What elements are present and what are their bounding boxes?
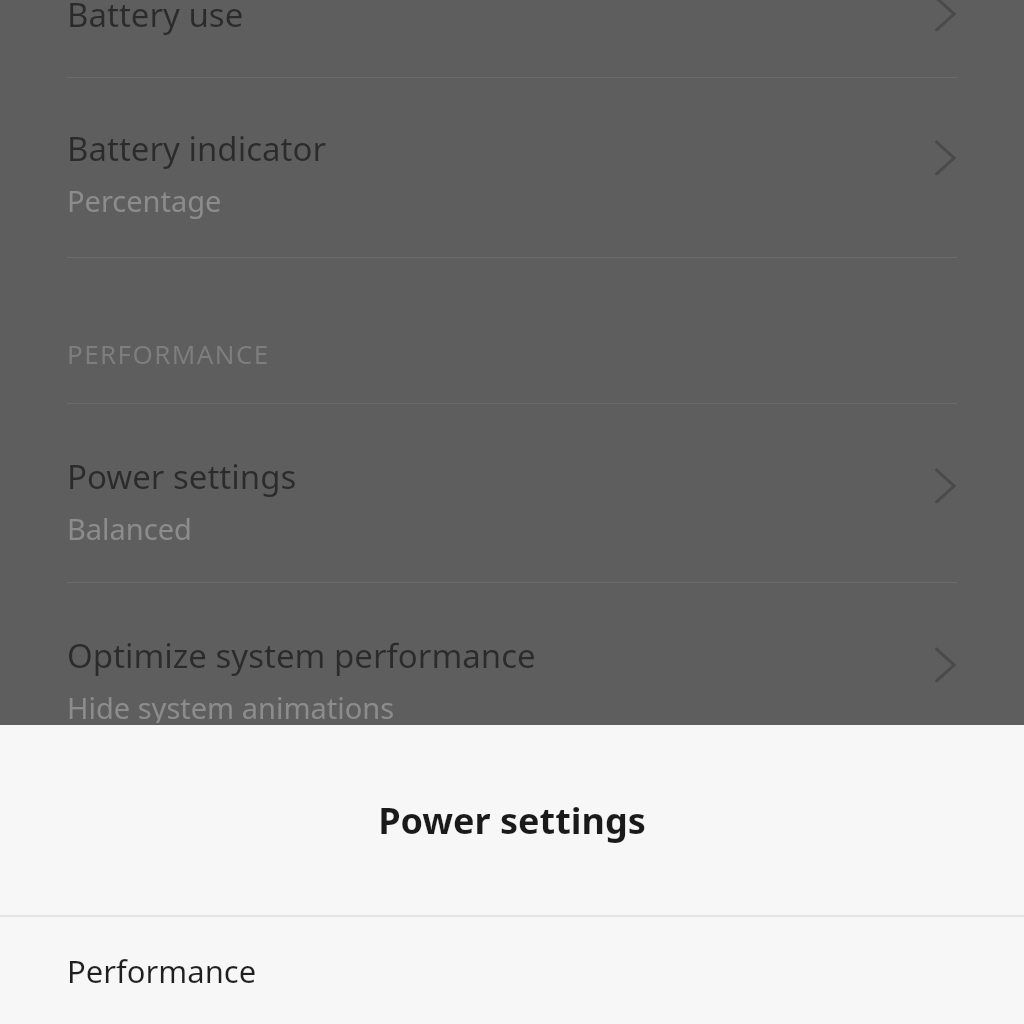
staticText: Performance [67,950,257,992]
button[interactable]: Optimize system performance [0,583,1024,723]
button[interactable]: Battery indicator [0,78,1024,257]
staticText: Power settings [67,454,297,499]
other: Open Power settings [933,468,957,504]
staticText: Percentage [67,181,222,220]
staticText: Battery indicator [67,126,327,171]
button[interactable]: Power settings [0,404,1024,582]
other: Open Optimize system performance [933,647,957,683]
button[interactable]: Performance [0,917,1024,1024]
other: Open Battery use [933,0,957,32]
other: Open Battery indicator [933,140,957,176]
button[interactable]: Battery use [0,0,1024,74]
staticText: Battery use [67,0,244,37]
staticText: PERFORMANCE [67,336,270,371]
staticText: Power settings [378,796,646,845]
staticText: Optimize system performance [67,633,536,678]
staticText: Balanced [67,509,192,548]
staticText: Hide system animations [67,688,395,723]
